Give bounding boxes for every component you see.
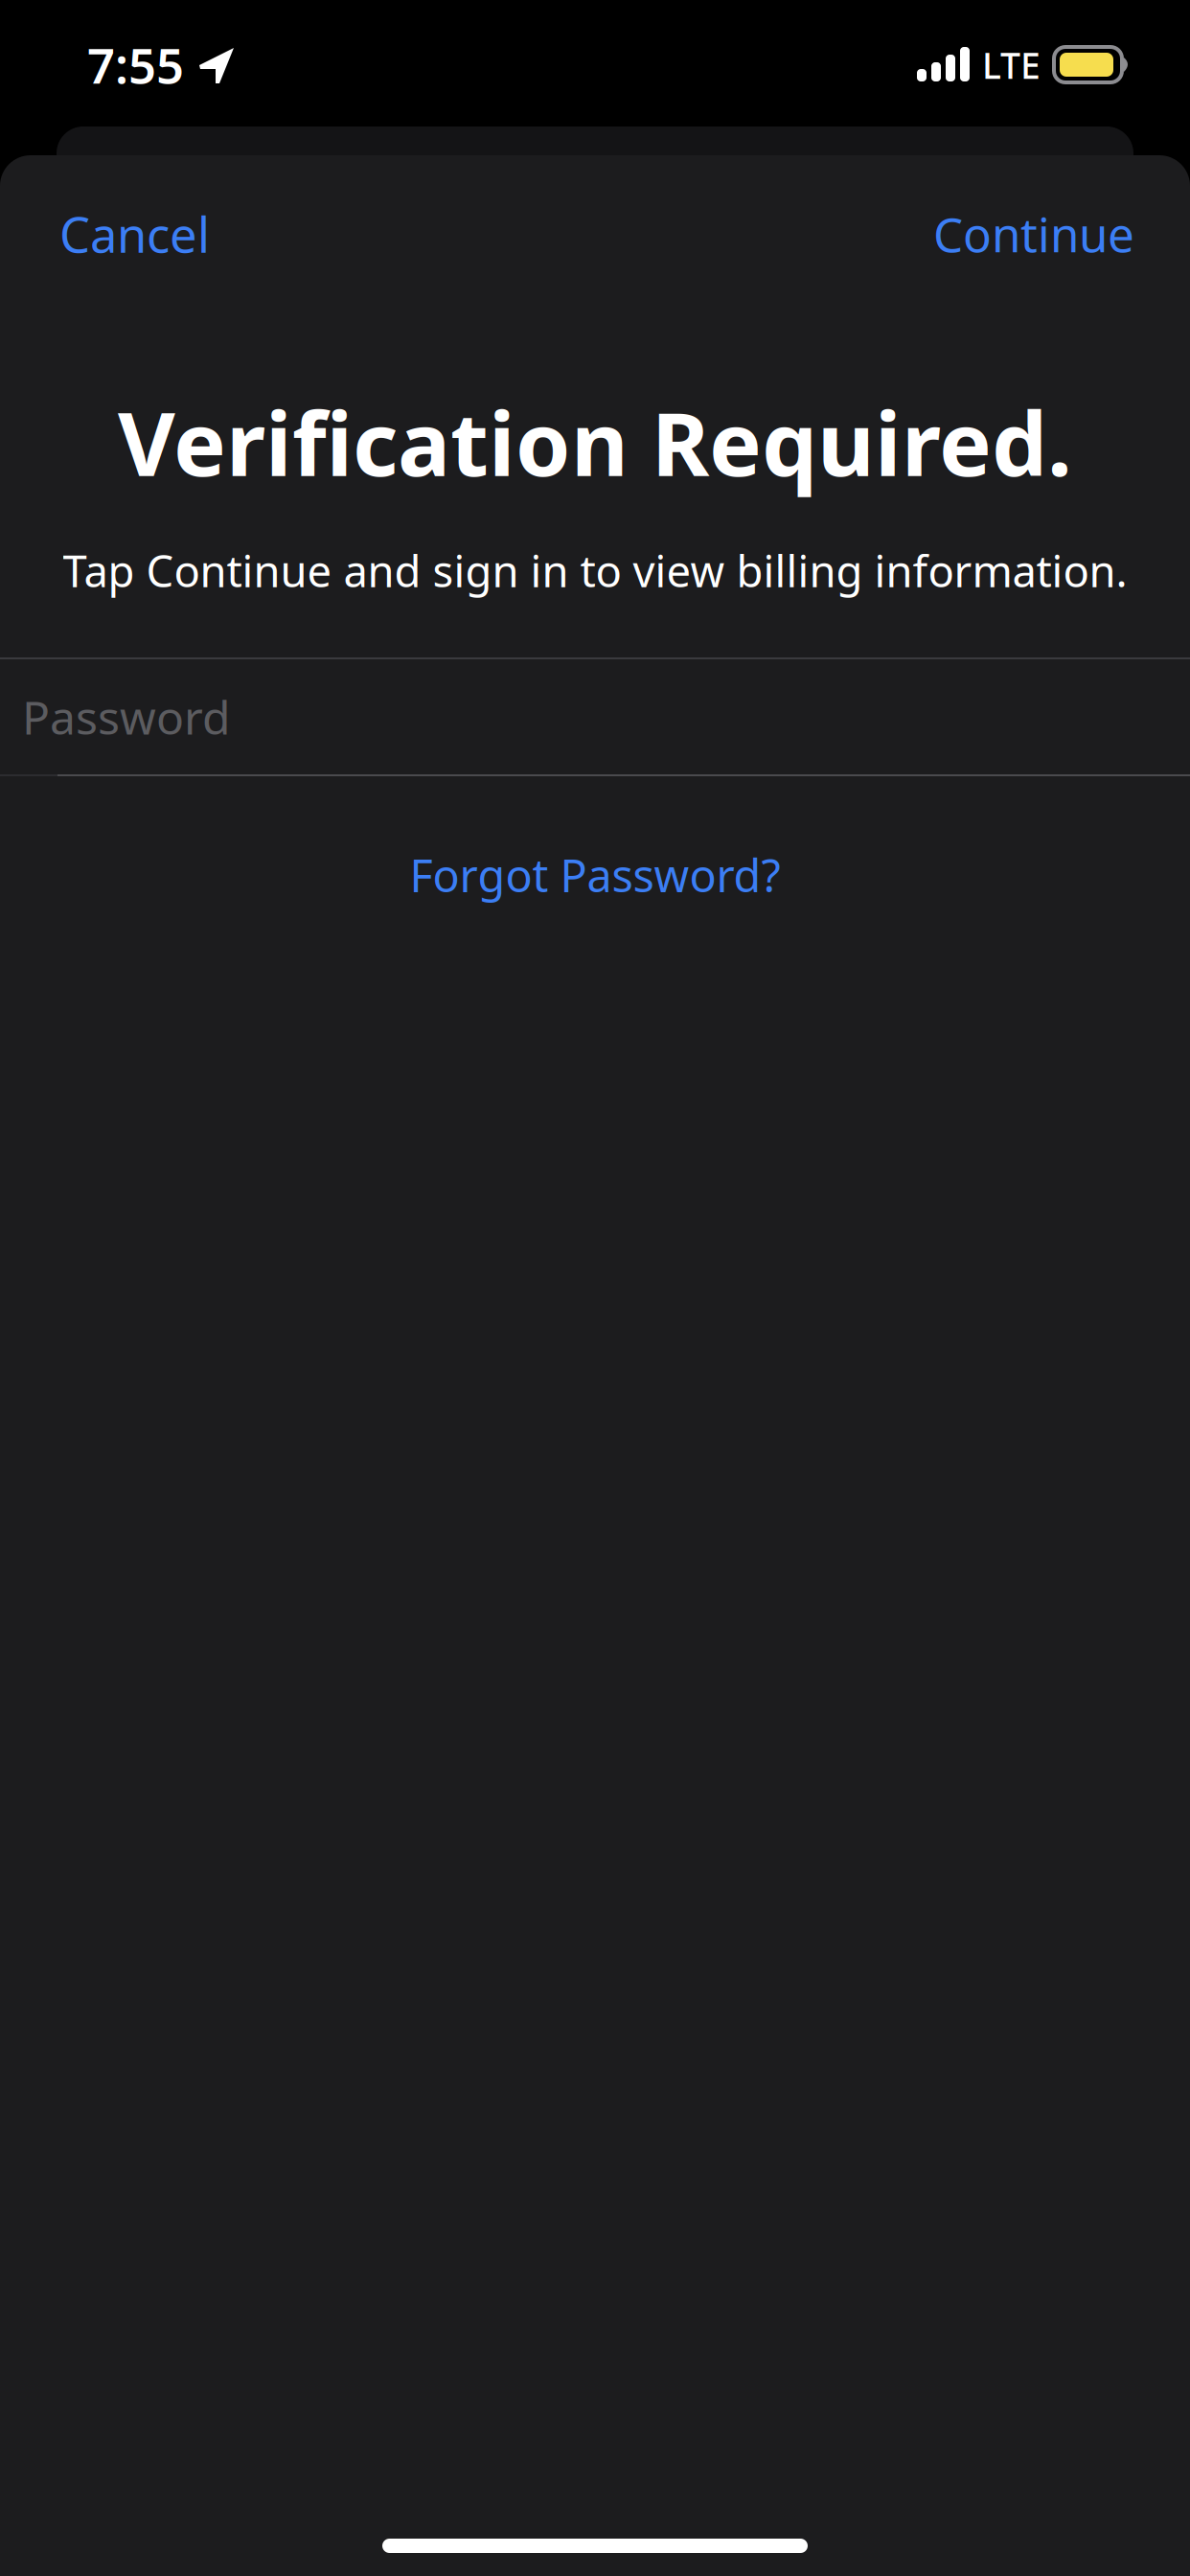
button[interactable]: Forgot Password?	[0, 841, 1190, 908]
staticText: 7:55	[87, 33, 184, 97]
button[interactable]: Continue	[924, 188, 1134, 280]
staticText: LTE	[982, 41, 1041, 89]
staticText: Continue	[933, 202, 1134, 265]
staticText: Forgot Password?	[410, 845, 780, 905]
staticText: Password	[22, 686, 231, 747]
staticText: Verification Required.	[118, 383, 1072, 500]
button[interactable]: Password	[22, 659, 1190, 774]
button[interactable]: Cancel	[59, 188, 230, 280]
staticText: Cancel	[59, 202, 210, 266]
staticText: Tap Continue and sign in to view billing…	[63, 541, 1127, 599]
